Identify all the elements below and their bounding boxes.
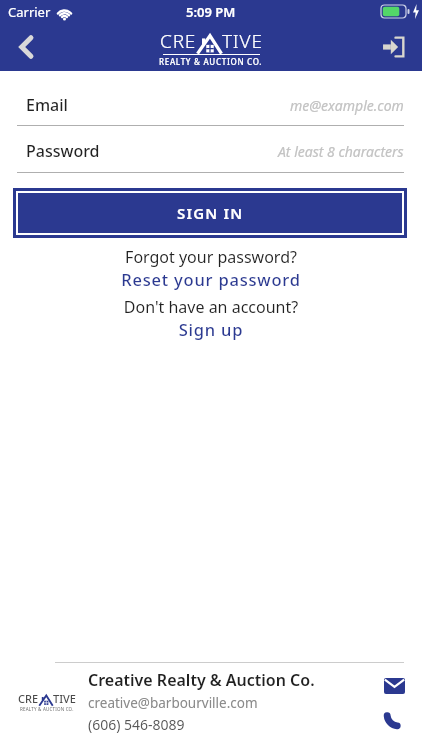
button[interactable] [382,706,406,730]
button[interactable]: SIGN IN [13,188,407,238]
staticText: TIVE [222,28,263,54]
button[interactable]: Reset your password [0,268,422,290]
button[interactable] [10,30,44,64]
staticText: Don't have an account? [0,296,422,318]
staticText: TIVE [53,691,76,706]
staticText: Forgot your password? [0,246,422,268]
staticText: me@example.com [290,96,404,115]
staticText: Password [26,140,100,162]
button[interactable] [382,674,406,698]
staticText: CRE [160,28,197,54]
staticText: 5:09 PM [186,3,236,21]
staticText: Carrier [8,3,51,21]
staticText: Email [26,94,68,116]
staticText: REALTY & AUCTION CO. [159,56,263,67]
button[interactable]: Sign up [0,318,422,340]
staticText: (606) 546-8089 [88,715,185,734]
button[interactable] [378,30,412,64]
staticText: CRE [18,691,39,706]
staticText: Creative Realty & Auction Co. [88,669,315,691]
staticText: At least 8 characters [278,142,404,161]
staticText: REALTY & AUCTION CO. [20,706,74,712]
staticText: creative@barbourville.com [88,694,258,712]
staticText: SIGN IN [177,203,244,223]
